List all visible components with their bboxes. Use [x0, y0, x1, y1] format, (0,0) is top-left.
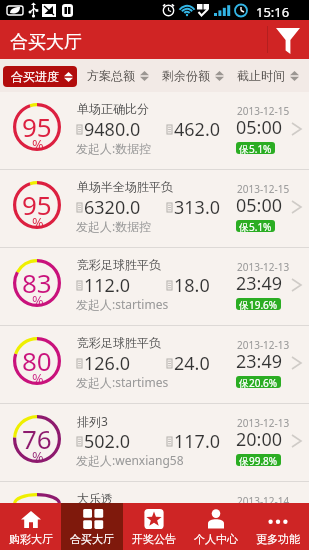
button[interactable]: 截止时间	[233, 65, 303, 86]
staticText: 313.0	[174, 195, 221, 220]
staticText: 80	[22, 343, 52, 378]
staticText: 发起人:数据控	[76, 140, 152, 156]
staticText: 剩余份额	[162, 68, 210, 83]
staticText: 单场半全场胜平负	[77, 179, 173, 194]
staticText: 15:16	[256, 3, 290, 21]
staticText: 个人中心	[194, 532, 238, 546]
staticText: 保19.6%	[239, 298, 278, 310]
button[interactable]: 62	[0, 482, 309, 503]
staticText: 24.0	[174, 351, 210, 376]
staticText: 9480.0	[84, 117, 141, 142]
staticText: 6320.0	[84, 195, 141, 220]
staticText: 更多功能	[256, 532, 300, 546]
button[interactable]: 95	[0, 170, 309, 247]
button[interactable]: 购彩大厅	[0, 503, 61, 550]
staticText: 发起人:wenxiang58	[76, 452, 184, 468]
staticText: 05:00	[236, 193, 283, 218]
button[interactable]: 76	[0, 404, 309, 481]
button[interactable]: 更多功能	[247, 503, 309, 550]
staticText: %	[32, 213, 44, 232]
staticText: 83	[22, 265, 52, 300]
staticText: 开奖公告	[132, 532, 176, 546]
staticText: 2013-12-13	[237, 338, 290, 352]
staticText: 合买进度	[11, 69, 59, 84]
staticText: 23:49	[236, 271, 283, 296]
staticText: 保99.8%	[239, 454, 278, 466]
staticText: 18.0	[174, 273, 210, 298]
staticText: 购彩大厅	[9, 532, 53, 546]
staticText: %	[32, 369, 44, 388]
staticText: 462.0	[174, 117, 221, 142]
button[interactable]: 个人中心	[185, 503, 247, 550]
staticText: %	[32, 291, 44, 310]
staticText: 2013-12-14	[237, 494, 290, 508]
staticText: 23:49	[236, 349, 283, 374]
staticText: 发起人:aaa	[76, 530, 136, 546]
button[interactable]: 80	[0, 326, 309, 403]
staticText: %	[32, 135, 44, 154]
staticText: 2013-12-15	[237, 104, 290, 118]
button[interactable]: 合买进度	[3, 66, 77, 87]
button[interactable]: 开奖公告	[123, 503, 185, 550]
staticText: 2013-12-13	[237, 260, 290, 274]
staticText: 05:00	[236, 115, 283, 140]
staticText: 竞彩足球胜平负	[77, 257, 161, 272]
staticText: 20:00	[236, 427, 283, 452]
staticText: 95	[22, 187, 52, 222]
staticText: 112.0	[84, 273, 131, 298]
staticText: 截止时间	[237, 68, 285, 83]
button[interactable]: 合买大厅	[61, 503, 123, 550]
staticText: %	[32, 525, 44, 544]
staticText: 保5.1%	[239, 142, 272, 154]
staticText: 大乐透	[77, 491, 113, 506]
staticText: 发起人:数据控	[76, 218, 152, 234]
staticText: 保10%	[239, 532, 269, 544]
button[interactable]: 方案总额	[83, 65, 153, 86]
staticText: 方案总额	[87, 68, 135, 83]
staticText: 1200.0	[84, 507, 141, 528]
staticText: 发起人:startimes	[76, 374, 169, 390]
staticText: 保5.1%	[239, 220, 272, 232]
staticText: 2013-12-15	[237, 182, 290, 196]
button[interactable]: 83	[0, 248, 309, 325]
button[interactable]: Filter	[267, 20, 309, 59]
staticText: 竞彩足球胜平负	[77, 335, 161, 350]
staticText: 单场正确比分	[77, 101, 149, 116]
staticText: 2013-12-13	[237, 416, 290, 430]
staticText: 126.0	[84, 351, 131, 376]
staticText: 76	[22, 421, 52, 456]
staticText: %	[32, 447, 44, 466]
staticText: 发起人:startimes	[76, 296, 169, 312]
staticText: 117.0	[174, 429, 221, 454]
button[interactable]: 剩余份额	[158, 65, 228, 86]
staticText: 合买大厅	[10, 31, 82, 54]
button[interactable]: 95	[0, 92, 309, 169]
staticText: 排列3	[77, 413, 108, 429]
staticText: 保20.6%	[239, 376, 278, 388]
staticText: 20:00	[236, 505, 283, 526]
staticText: 合买大厅	[70, 532, 114, 546]
staticText: 95	[22, 109, 52, 144]
staticText: 502.0	[84, 429, 131, 454]
staticText: 45.0	[174, 507, 210, 528]
staticText: 62	[22, 499, 52, 520]
